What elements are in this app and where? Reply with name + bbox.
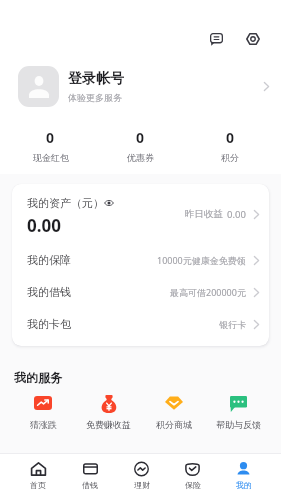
staticText: 免费赚收益 [86, 419, 131, 430]
button[interactable]: 登录帐号 [0, 66, 281, 107]
staticText: 首页 [30, 480, 46, 490]
staticText: 积分商城 [156, 419, 192, 430]
button[interactable]: 0 [95, 128, 185, 163]
staticText: 保险 [185, 480, 201, 490]
staticText: 猜涨跌 [30, 419, 57, 430]
button[interactable]: 我的卡包 [12, 308, 269, 340]
button[interactable]: 我的借钱 [12, 276, 269, 308]
button[interactable]: 我的资产（元） [12, 184, 269, 244]
staticText: 0.00 [227, 208, 246, 221]
button[interactable]: Messages [202, 25, 230, 53]
staticText: 体验更多服务 [68, 92, 122, 103]
staticText: 理财 [134, 480, 150, 490]
staticText: 0.00 [27, 214, 61, 237]
staticText: 我的 [236, 480, 252, 490]
staticText: 借钱 [82, 480, 98, 490]
staticText: 我的保障 [27, 253, 71, 267]
staticText: 帮助与反馈 [216, 419, 261, 430]
button[interactable]: 积分商城 [141, 395, 206, 430]
button[interactable]: 借钱 [64, 454, 116, 490]
staticText: 我的借钱 [27, 285, 71, 299]
staticText: 0 [136, 128, 145, 147]
staticText: 我的卡包 [27, 317, 71, 331]
button[interactable]: 首页 [12, 454, 64, 490]
staticText: 登录帐号 [68, 70, 124, 88]
button[interactable]: 理财 [116, 454, 167, 490]
button[interactable]: 我的保障 [12, 244, 269, 276]
button[interactable]: 免费赚收益 [76, 395, 141, 430]
staticText: 0 [226, 128, 235, 147]
staticText: 我的资产（元） [27, 196, 104, 210]
staticText: 0 [46, 128, 55, 147]
button[interactable]: 猜涨跌 [10, 395, 76, 430]
button[interactable]: Settings [239, 25, 267, 53]
button[interactable]: 我的 [218, 454, 269, 490]
staticText: 银行卡 [219, 319, 246, 330]
staticText: 10000元健康金免费领 [157, 254, 246, 266]
button[interactable]: 0 [185, 128, 275, 163]
button[interactable]: 保险 [167, 454, 218, 490]
staticText: 我的服务 [14, 370, 62, 385]
button[interactable]: 帮助与反馈 [206, 395, 271, 430]
staticText: 最高可借200000元 [170, 286, 246, 298]
staticText: 优惠券 [127, 152, 154, 163]
button[interactable]: 0 [6, 128, 95, 163]
staticText: 现金红包 [33, 152, 69, 163]
staticText: 积分 [221, 152, 239, 163]
staticText: 昨日收益 [185, 208, 223, 220]
